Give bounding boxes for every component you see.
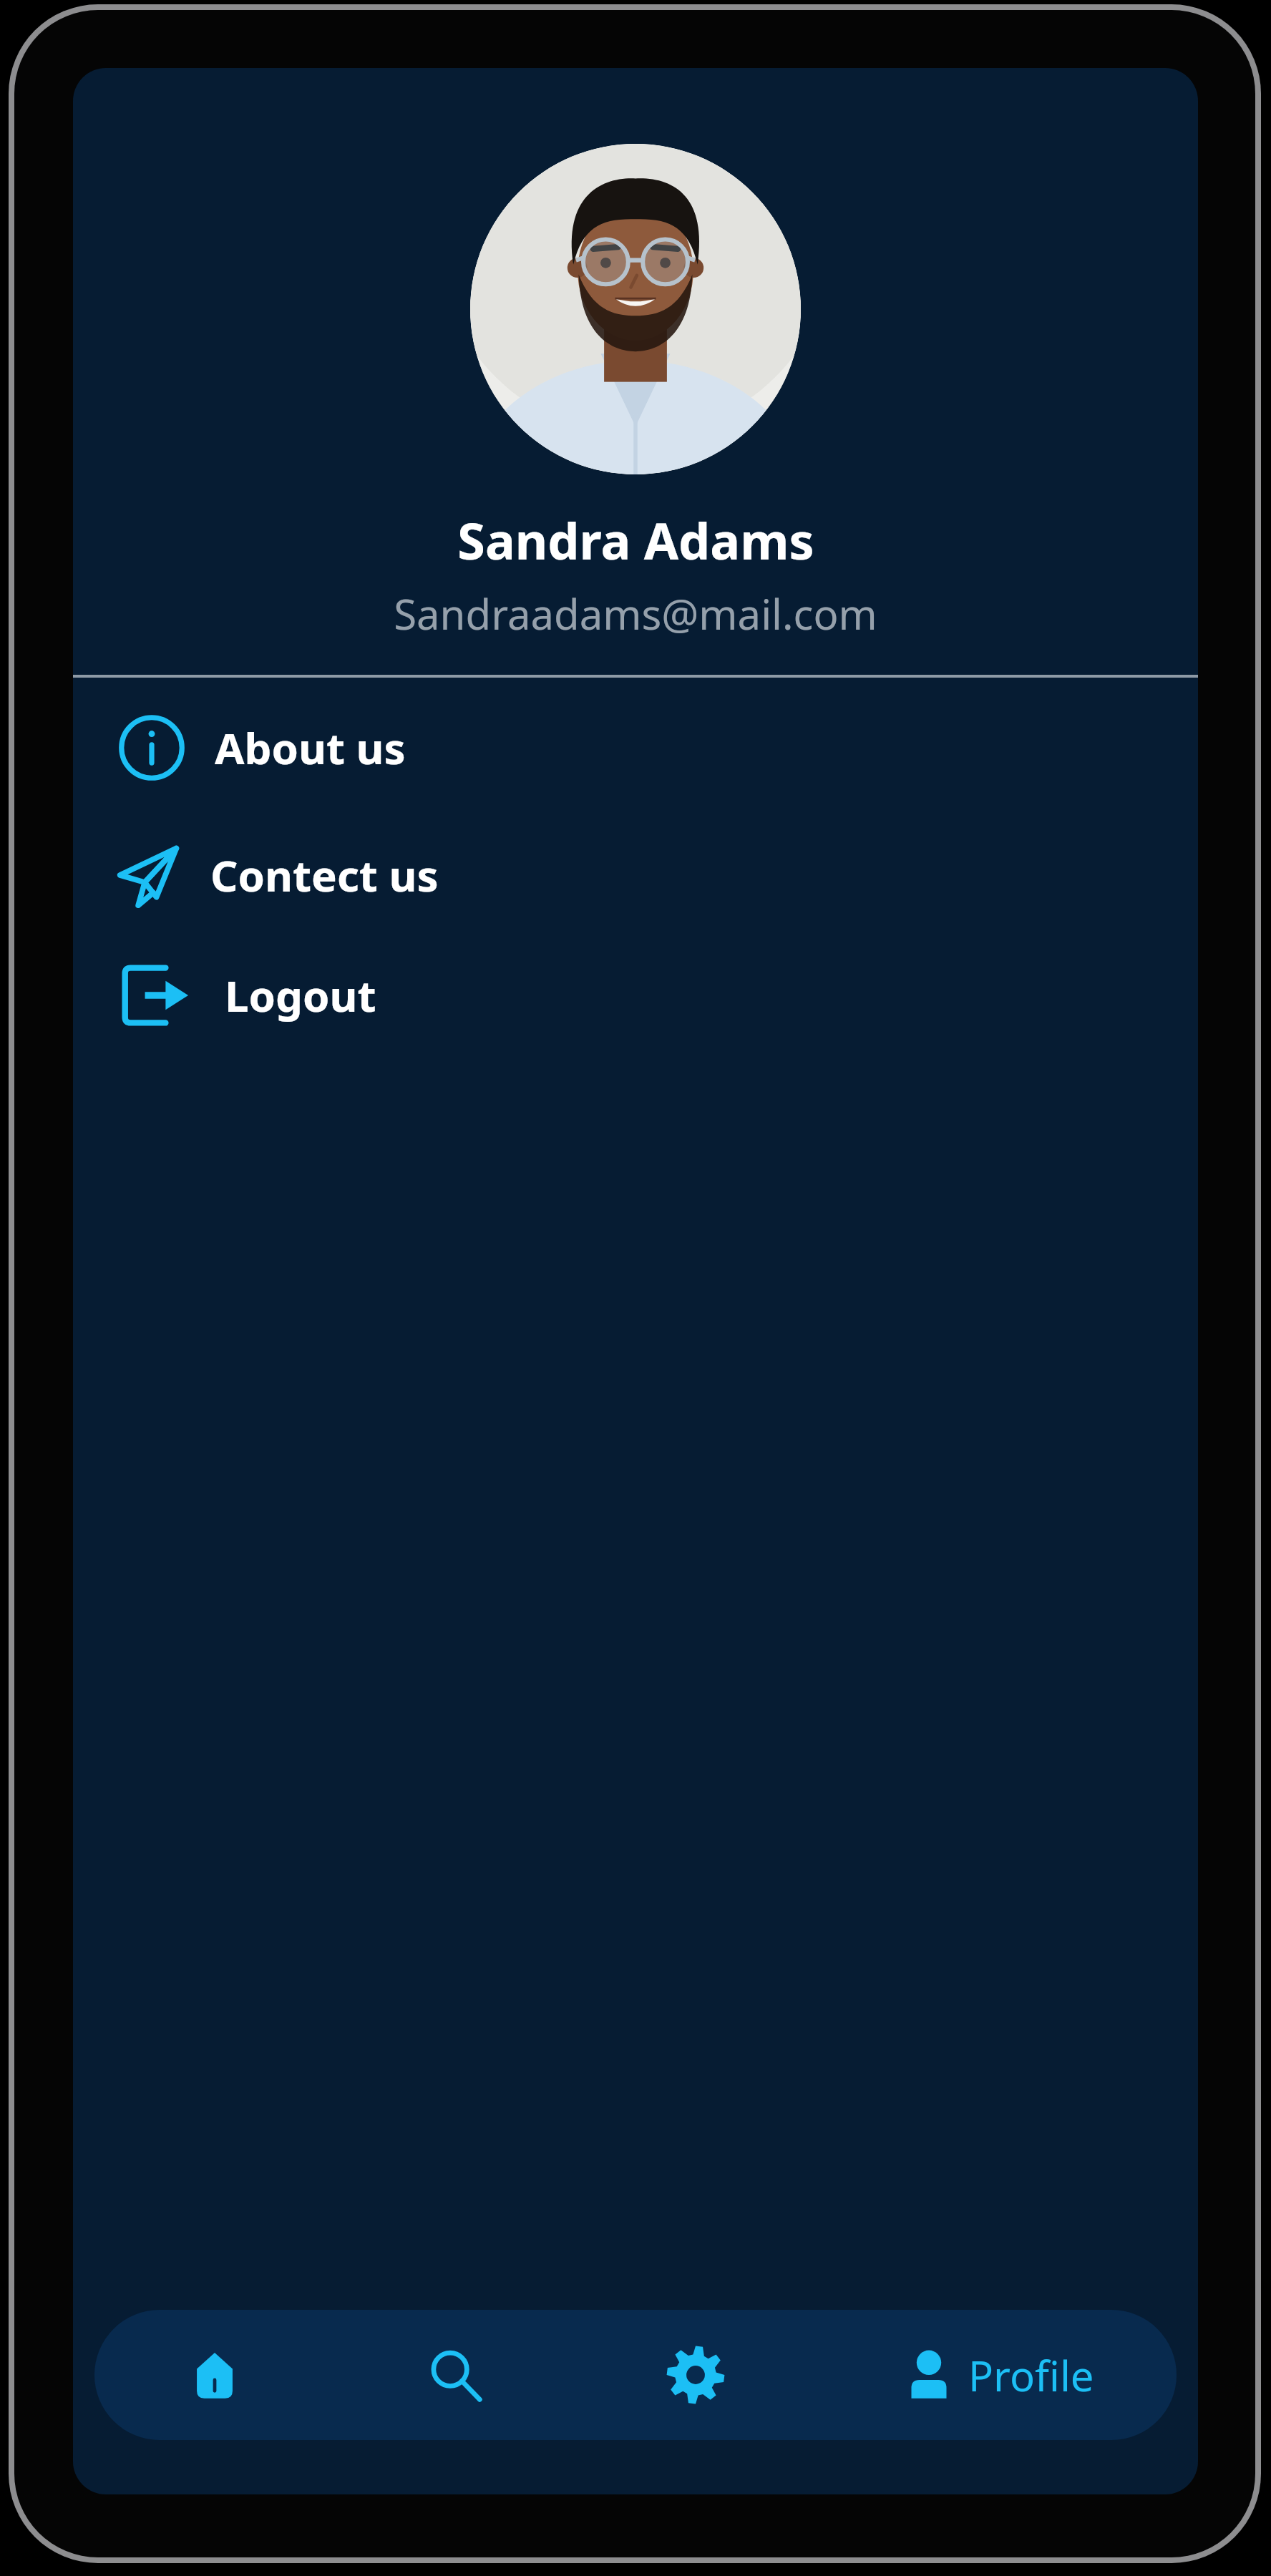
button[interactable]: Home (94, 2310, 335, 2440)
button[interactable]: Search (335, 2310, 575, 2440)
button[interactable]: Settings (575, 2310, 816, 2440)
button[interactable]: About us (73, 706, 1198, 789)
button[interactable]: Logout (73, 954, 1198, 1037)
staticText: Sandraadams@mail.com (394, 585, 877, 642)
staticText: Profile (968, 2347, 1094, 2404)
staticText: Logout (225, 966, 376, 1025)
button[interactable]: Profile (816, 2310, 1177, 2440)
staticText: Sandra Adams (457, 506, 814, 574)
button[interactable]: Contect us (73, 834, 1198, 917)
staticText: About us (215, 718, 406, 777)
staticText: Contect us (210, 846, 439, 904)
button[interactable]: Profile photo (470, 144, 801, 474)
